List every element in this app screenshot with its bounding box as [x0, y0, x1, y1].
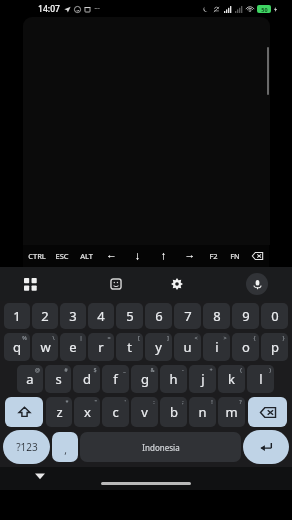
staticText: 50	[261, 6, 268, 13]
staticText: Indonesia	[142, 442, 180, 453]
button[interactable]: 4	[88, 303, 114, 329]
staticText: s	[55, 370, 62, 388]
button[interactable]: 6	[145, 303, 172, 329]
button[interactable]: d	[73, 365, 100, 393]
staticText: r	[98, 338, 104, 356]
staticText: ALT	[80, 251, 93, 261]
button[interactable]: Settings	[146, 267, 207, 301]
button[interactable]: 7	[174, 303, 201, 329]
staticText: x	[84, 403, 91, 421]
button[interactable]: t	[116, 333, 143, 361]
staticText: CTRL	[28, 251, 46, 261]
button[interactable]: k	[218, 365, 245, 393]
button[interactable]: z	[46, 397, 72, 427]
button[interactable]: h	[160, 365, 187, 393]
button[interactable]: Hide keyboard	[32, 468, 48, 484]
button[interactable]: Apps	[24, 267, 85, 301]
button[interactable]: x	[74, 397, 100, 427]
button[interactable]: FN	[224, 245, 246, 267]
staticText: u	[183, 338, 192, 356]
staticText: 6	[155, 307, 163, 325]
button[interactable]: Voice input	[207, 267, 268, 301]
button[interactable]: y	[145, 333, 172, 361]
button[interactable]: ?123	[3, 430, 50, 464]
staticText: w	[40, 338, 51, 356]
button[interactable]: j	[189, 365, 216, 393]
button[interactable]: f	[102, 365, 129, 393]
button[interactable]: s	[45, 365, 71, 393]
button[interactable]: 1	[4, 303, 30, 329]
staticText: c	[112, 403, 119, 421]
staticText: _	[123, 366, 126, 373]
staticText: 8	[213, 307, 221, 325]
staticText: \	[52, 334, 55, 341]
button[interactable]: Stickers	[85, 267, 146, 301]
button[interactable]: i	[203, 333, 230, 361]
button[interactable]: Backspace	[246, 245, 269, 267]
button[interactable]: ALT	[74, 245, 98, 267]
button[interactable]: e	[60, 333, 86, 361]
button[interactable]: v	[131, 397, 158, 427]
button[interactable]: 2	[32, 303, 58, 329]
staticText: ?123	[16, 440, 38, 454]
staticText: |	[79, 334, 83, 341]
staticText: e	[69, 338, 77, 356]
staticText: [	[138, 334, 140, 341]
staticText: '	[124, 398, 126, 405]
button[interactable]: l	[247, 365, 274, 393]
button[interactable]: 0	[261, 303, 288, 329]
button[interactable]: Arrow down	[124, 245, 150, 267]
button[interactable]: w	[32, 333, 58, 361]
staticText: ;	[182, 398, 184, 405]
staticText: y	[155, 338, 162, 356]
staticText: ···	[94, 4, 100, 14]
staticText: i	[215, 338, 219, 356]
button[interactable]: 5	[116, 303, 143, 329]
staticText: :	[153, 398, 155, 405]
button[interactable]: ,	[52, 432, 78, 462]
button[interactable]: a	[17, 365, 43, 393]
button[interactable]: Arrow right	[176, 245, 202, 267]
button[interactable]: u	[174, 333, 201, 361]
button[interactable]: g	[131, 365, 158, 393]
staticText: +	[209, 366, 213, 373]
staticText: d	[83, 370, 91, 388]
button[interactable]: p	[261, 333, 288, 361]
button[interactable]: n	[189, 397, 216, 427]
staticText: 1	[13, 307, 21, 325]
staticText: @	[35, 366, 40, 373]
staticText: F2	[209, 251, 218, 261]
staticText: (	[240, 366, 242, 373]
staticText: j	[201, 370, 205, 388]
staticText: 5	[126, 307, 134, 325]
button[interactable]: 9	[232, 303, 259, 329]
button[interactable]: Indonesia	[80, 432, 241, 462]
button[interactable]: m	[218, 397, 245, 427]
button[interactable]: Arrow left	[98, 245, 124, 267]
staticText: p	[271, 338, 279, 356]
staticText: {	[253, 334, 256, 341]
button[interactable]: Enter	[243, 430, 289, 464]
button[interactable]: b	[160, 397, 187, 427]
button[interactable]: o	[232, 333, 259, 361]
button[interactable]: c	[102, 397, 129, 427]
button[interactable]: 8	[203, 303, 230, 329]
button[interactable]: Backspace	[248, 397, 287, 427]
staticText: k	[228, 370, 235, 388]
button[interactable]: F2	[202, 245, 224, 267]
staticText: 0	[271, 307, 279, 325]
button[interactable]: ESC	[50, 245, 74, 267]
staticText: 3	[69, 307, 77, 325]
staticText: "	[94, 398, 97, 405]
button[interactable]: CTRL	[23, 245, 50, 267]
staticText: &	[150, 366, 155, 373]
button[interactable]: q	[4, 333, 30, 361]
button[interactable]: 3	[60, 303, 86, 329]
button[interactable]: Shift	[5, 397, 43, 427]
staticText: !	[211, 398, 213, 405]
staticText: m	[225, 403, 238, 421]
staticText: }	[282, 334, 285, 341]
staticText: f	[113, 370, 118, 388]
button[interactable]: Arrow up	[150, 245, 176, 267]
button[interactable]: r	[88, 333, 114, 361]
